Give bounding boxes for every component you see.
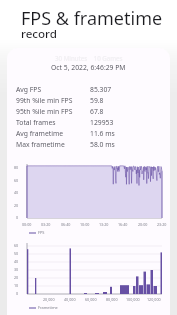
staticText: 10:00	[80, 222, 90, 227]
staticText: 20:00	[138, 222, 148, 227]
staticText: 10	[14, 283, 19, 288]
staticText: Oct 5, 2022, 6:46:29 PM	[51, 63, 126, 72]
staticText: 13:20	[99, 222, 109, 227]
staticText: FPS & frametime	[21, 6, 163, 31]
staticText: 129953	[90, 118, 114, 127]
staticText: 99th %ile min FPS	[16, 96, 73, 105]
staticText: 20	[14, 275, 19, 280]
staticText: 40,000	[64, 297, 76, 302]
staticText: 20,000	[43, 297, 55, 302]
button[interactable]: Avg frametime	[7, 128, 170, 139]
staticText: 03:20	[41, 222, 51, 227]
staticText: 58.0 ms	[90, 140, 115, 149]
staticText: 60	[14, 178, 19, 183]
staticText: 95th %ile min FPS	[16, 107, 73, 116]
staticText: 85.307	[90, 85, 112, 94]
button[interactable]: 99th %ile min FPS	[7, 95, 170, 106]
staticText: 00:00	[22, 222, 32, 227]
staticText: 20	[14, 203, 19, 208]
staticText: 40	[14, 190, 19, 195]
staticText: 50	[14, 251, 19, 256]
staticText: 60,000	[85, 297, 97, 302]
staticText: 23:20	[157, 222, 167, 227]
staticText: 120,000	[147, 297, 161, 302]
staticText: 60	[14, 243, 19, 248]
staticText: Avg FPS	[16, 85, 42, 94]
staticText: Avg frametime	[16, 129, 64, 138]
staticText: 16:40	[118, 222, 128, 227]
staticText: Max frametime	[16, 140, 65, 149]
staticText: 0	[16, 215, 19, 220]
button[interactable]: Total frames	[7, 117, 170, 128]
staticText: 30 Minutes 10 Games	[55, 54, 123, 62]
staticText: 80	[14, 165, 19, 170]
button[interactable]: Avg FPS	[7, 84, 170, 95]
staticText: 40	[14, 259, 19, 264]
staticText: 67.8	[90, 107, 104, 116]
staticText: 0	[16, 291, 19, 296]
button[interactable]: Max frametime	[7, 139, 170, 150]
staticText: 30	[14, 267, 19, 272]
staticText: Total frames	[16, 118, 56, 127]
button[interactable]: 95th %ile min FPS	[7, 106, 170, 117]
staticText: 06:40	[61, 222, 71, 227]
staticText: record	[21, 26, 57, 42]
staticText: 59.8	[90, 96, 104, 105]
staticText: 80,000	[106, 297, 118, 302]
staticText: 100,000	[126, 297, 140, 302]
staticText: Frametime	[38, 305, 58, 310]
staticText: FPS	[38, 230, 45, 235]
staticText: 11.6 ms	[90, 129, 115, 138]
